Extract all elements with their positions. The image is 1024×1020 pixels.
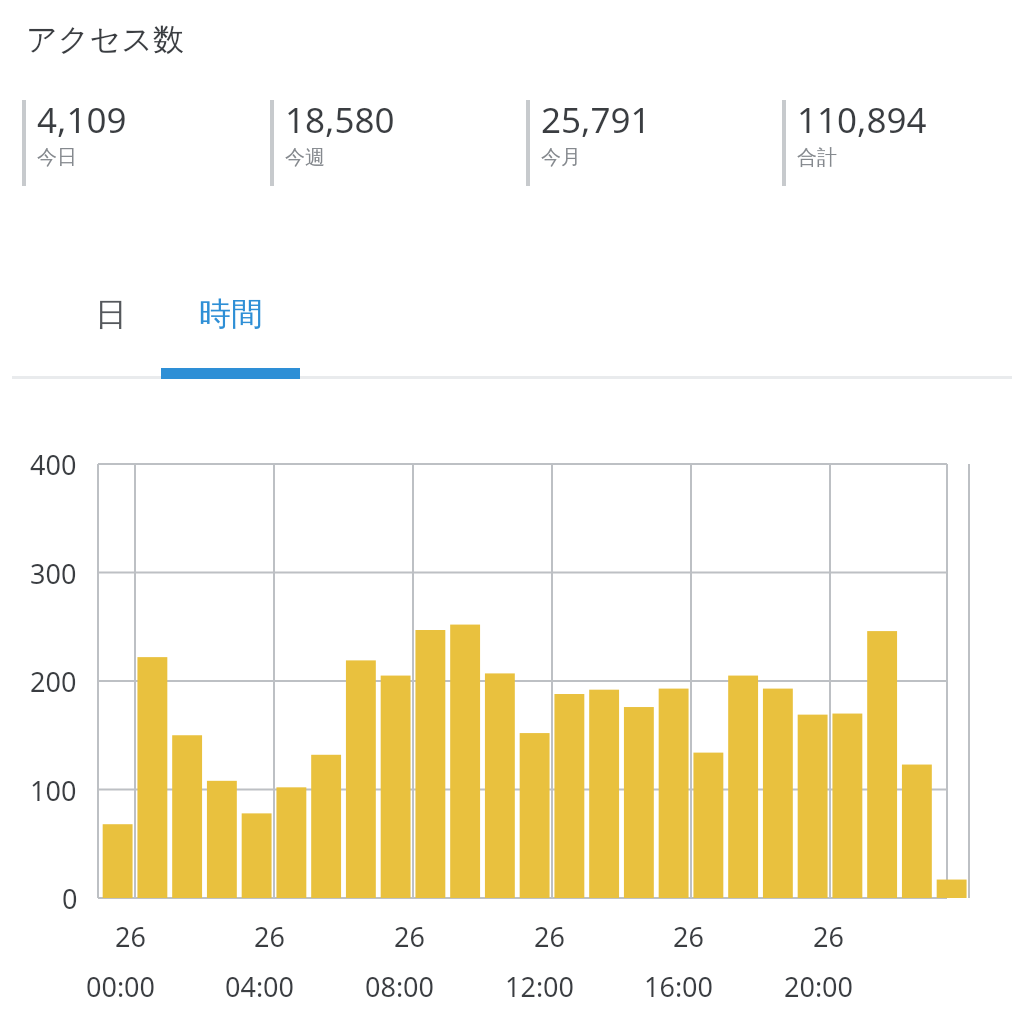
staticText: 00:00 xyxy=(86,968,156,1005)
staticText: 25,791 xyxy=(541,96,651,144)
staticText: 日 xyxy=(95,294,127,334)
staticText: 20:00 xyxy=(784,968,854,1005)
staticText: 今日 xyxy=(37,145,77,170)
button[interactable]: 18,580 xyxy=(256,96,512,192)
staticText: 4,109 xyxy=(37,96,127,144)
staticText: 合計 xyxy=(797,145,837,170)
staticText: 26 xyxy=(394,918,425,955)
staticText: 26 xyxy=(115,918,146,955)
staticText: 110,894 xyxy=(797,96,927,144)
button[interactable]: 日 xyxy=(57,282,165,378)
staticText: 今週 xyxy=(285,145,325,170)
button[interactable]: 4,109 xyxy=(0,96,256,192)
staticText: 26 xyxy=(254,918,285,955)
staticText: 今月 xyxy=(541,145,581,170)
staticText: 300 xyxy=(30,555,77,592)
staticText: 200 xyxy=(30,663,77,700)
button[interactable]: 110,894 xyxy=(768,96,1024,192)
staticText: 0 xyxy=(62,880,78,917)
staticText: 26 xyxy=(534,918,565,955)
staticText: 08:00 xyxy=(365,968,435,1005)
button[interactable]: 25,791 xyxy=(512,96,768,192)
staticText: 04:00 xyxy=(225,968,295,1005)
staticText: 16:00 xyxy=(644,968,714,1005)
staticText: 100 xyxy=(30,772,77,809)
staticText: 12:00 xyxy=(505,968,575,1005)
button[interactable]: 時間 xyxy=(161,282,300,378)
staticText: 26 xyxy=(673,918,704,955)
staticText: 時間 xyxy=(199,294,263,334)
staticText: 18,580 xyxy=(285,96,395,144)
staticText: アクセス数 xyxy=(26,20,184,59)
staticText: 26 xyxy=(813,918,844,955)
staticText: 400 xyxy=(30,446,77,483)
